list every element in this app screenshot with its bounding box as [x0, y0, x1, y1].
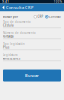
staticText: Tipo de documento [3, 20, 31, 24]
button[interactable]: Back [2, 5, 5, 10]
staticText: Tipo legislación [3, 42, 25, 46]
staticText: Plus [3, 46, 9, 49]
staticText: Fortaleza [3, 35, 13, 38]
button[interactable]: Contrato [45, 15, 61, 18]
staticText: Buscar [25, 73, 39, 78]
staticText: Antecesores [3, 57, 20, 60]
staticText: Consulta CRP [6, 5, 33, 10]
button[interactable]: Buscar [3, 69, 61, 81]
button[interactable]: CRP [34, 15, 43, 18]
staticText: 9:41 [2, 0, 9, 3]
staticText: Contrato [49, 15, 61, 18]
staticText: Legislatura [3, 53, 17, 57]
staticText: Número de documento [3, 31, 36, 35]
staticText: Cédula [3, 24, 13, 27]
staticText: CRP [37, 15, 43, 18]
staticText: 100% [54, 0, 62, 3]
staticText: Buscar por [3, 15, 18, 18]
